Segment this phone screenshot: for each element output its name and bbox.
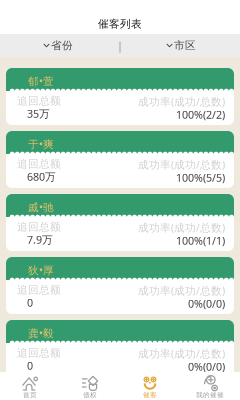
button[interactable]: 追回总额 [6,257,234,314]
staticText: 35万 [27,106,50,121]
staticText: 100%(5/5) [176,170,225,185]
button[interactable]: 债权 [60,372,120,400]
staticText: 追回总额 [17,157,61,170]
staticText: 戚•驰 [28,200,54,214]
staticText: 0 [27,358,33,373]
staticText: 0%(0/0) [188,359,225,374]
button[interactable]: 追回总额 [6,131,234,188]
staticText: 成功率(成功/总数) [138,157,225,171]
button[interactable]: 追回总额 [6,320,234,377]
staticText: 7.9万 [27,232,53,247]
staticText: 成功率(成功/总数) [138,220,225,234]
staticText: 680万 [27,169,56,184]
staticText: 0 [27,295,33,310]
button[interactable]: 追回总额 [6,68,234,125]
staticText: 追回总额 [17,283,61,296]
staticText: 成功率(成功/总数) [138,283,225,297]
button[interactable]: 追回总额 [6,194,234,251]
button[interactable]: 催客 [120,372,180,400]
staticText: 追回总额 [17,346,61,359]
staticText: 省份 [51,39,73,52]
button[interactable]: 我的催催 [180,372,240,400]
staticText: 于•爽 [28,137,54,151]
button[interactable]: 省份 [0,34,117,57]
staticText: 成功率(成功/总数) [138,346,225,360]
staticText: 0%(0/0) [188,296,225,311]
staticText: 首页 [23,391,37,399]
staticText: 追回总额 [17,220,61,233]
button[interactable]: 首页 [0,372,60,400]
staticText: 100%(2/2) [176,107,225,122]
staticText: 郁•萱 [28,74,54,88]
staticText: | [117,38,123,53]
staticText: 催客列表 [98,17,142,30]
staticText: 催客 [143,391,157,399]
staticText: 我的催催 [196,391,224,399]
staticText: 100%(1/1) [176,233,225,248]
staticText: 追回总额 [17,94,61,107]
staticText: 市区 [174,39,196,52]
staticText: 成功率(成功/总数) [138,94,225,108]
staticText: 狄•厚 [28,263,54,277]
staticText: 债权 [83,391,97,399]
staticText: 龚•毅 [28,326,54,340]
button[interactable]: 市区 [123,34,240,57]
